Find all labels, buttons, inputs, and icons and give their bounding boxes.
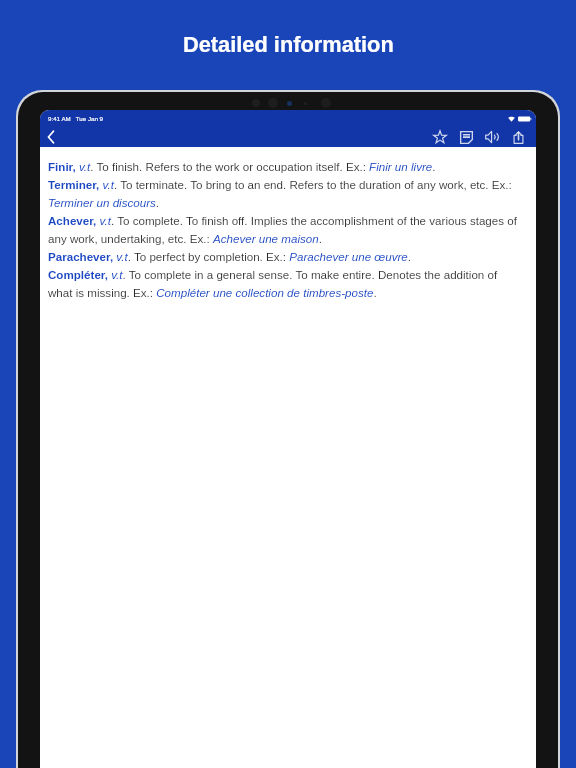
button[interactable]: Favorite (430, 127, 450, 147)
staticText: 9:41 AM Tue Jan 9 (48, 115, 104, 122)
button[interactable]: Pronounce (482, 127, 502, 147)
staticText: Finir, v.t. To finish. Refers to the wor… (48, 160, 522, 299)
staticText: Detailed information (183, 32, 394, 56)
button[interactable]: Note (456, 127, 476, 147)
button[interactable]: Back (41, 127, 61, 147)
button[interactable]: Share (508, 127, 528, 147)
